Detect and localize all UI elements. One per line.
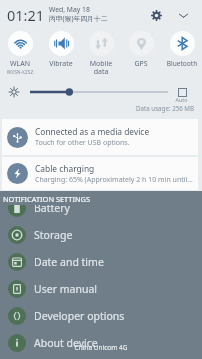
button[interactable]: Auto brightness (178, 88, 187, 97)
button[interactable]: Cable charging (2, 157, 198, 190)
staticText: Vibrate (41, 59, 81, 69)
staticText: China Unicom 4G (0, 343, 202, 352)
button[interactable]: Date and time (0, 248, 202, 275)
button[interactable]: Collapse (171, 3, 195, 27)
staticText: Touch for other USB options. (35, 138, 130, 148)
staticText: NOTIFICATION SETTINGS (3, 194, 91, 204)
button[interactable]: NOTIFICATION SETTINGS (0, 191, 202, 205)
staticText: 01:21 (7, 5, 45, 25)
button[interactable]: Vibrate (41, 31, 81, 69)
staticText: Date and time (34, 255, 104, 269)
staticText: 丙申(猴)年四月十二 (49, 14, 108, 23)
staticText: Connected as a media device (35, 126, 150, 137)
staticText: Data usage: 256 MB (0, 104, 194, 112)
button[interactable]: User manual (0, 275, 202, 302)
staticText: GPS (121, 59, 161, 69)
button[interactable]: Connected as a media device (2, 119, 198, 155)
button[interactable]: Brightness (30, 86, 168, 98)
button[interactable]: About device (0, 329, 202, 356)
staticText: Battery (34, 201, 70, 215)
button[interactable]: Settings (144, 3, 168, 27)
staticText: WXSN-XZSZ (0, 69, 40, 76)
staticText: Wed, May 18 (49, 5, 90, 14)
button[interactable]: Bluetooth (162, 31, 202, 68)
staticText: About device (34, 336, 98, 350)
button[interactable]: GPS (121, 31, 161, 69)
staticText: Developer options (34, 309, 125, 323)
button[interactable]: Mobile data (81, 31, 121, 76)
staticText: WLAN (0, 59, 40, 69)
staticText: Bluetooth (162, 59, 202, 68)
staticText: Auto (172, 96, 191, 103)
staticText: Charging: 65% (Approximately 2 h 10 min … (35, 175, 193, 185)
button[interactable]: Storage (0, 221, 202, 248)
button[interactable]: WLAN (0, 31, 40, 76)
button[interactable]: Developer options (0, 302, 202, 329)
staticText: User manual (34, 282, 97, 296)
staticText: Mobile data (81, 59, 121, 76)
button[interactable]: Battery (0, 194, 202, 221)
staticText: Storage (34, 228, 73, 242)
staticText: Cable charging (35, 163, 95, 174)
